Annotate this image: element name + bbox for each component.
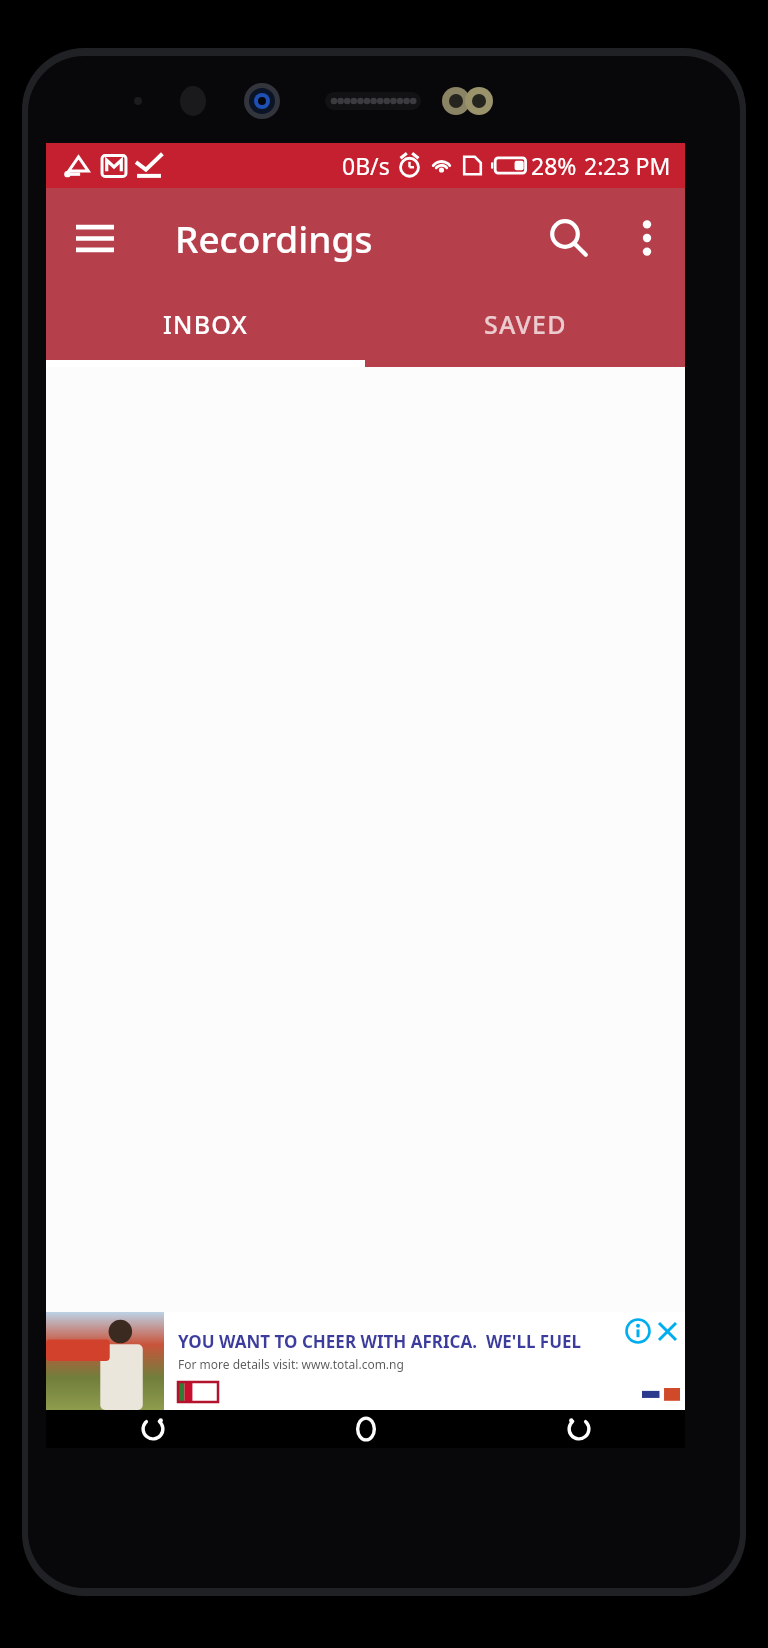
staticText: Recordings	[175, 213, 373, 263]
button[interactable]: Back	[46, 1410, 259, 1448]
button[interactable]: INBOX	[46, 288, 365, 360]
button[interactable]: More options	[609, 200, 685, 276]
button[interactable]: Open navigation drawer	[59, 202, 131, 274]
staticText: SAVED	[484, 307, 567, 341]
button[interactable]: Close ad	[654, 1318, 680, 1344]
staticText: YOU WANT TO CHEER WITH AFRICA. WE'LL FUE…	[178, 1330, 619, 1353]
staticText: INBOX	[163, 307, 248, 341]
button[interactable]: YOU WANT TO CHEER WITH AFRICA. WE'LL FUE…	[46, 1312, 685, 1410]
button[interactable]: Home	[259, 1410, 472, 1448]
staticText: 0B/s	[342, 150, 390, 181]
button[interactable]: Ad choices info	[625, 1318, 651, 1344]
staticText: 2:23 PM	[584, 150, 671, 181]
staticText: For more details visit: www.total.com.ng	[178, 1356, 404, 1372]
button[interactable]: Search	[529, 198, 609, 278]
button[interactable]: Recent apps	[472, 1410, 685, 1448]
button[interactable]: SAVED	[365, 288, 685, 360]
staticText: 28%	[531, 150, 577, 181]
